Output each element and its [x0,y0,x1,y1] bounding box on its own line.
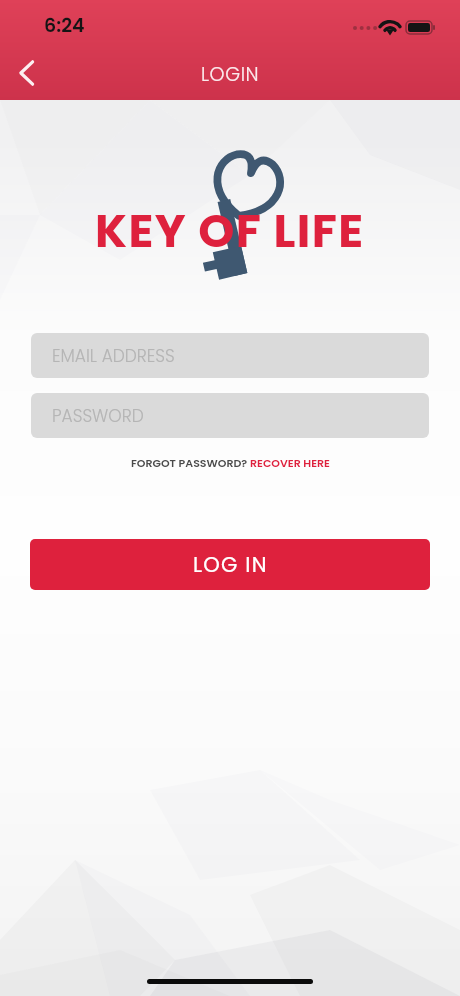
staticText: 6:24 [44,12,85,39]
staticText: KEY OF LIFE [95,199,365,263]
staticText: LOG IN [193,550,268,579]
button[interactable]: EMAIL ADDRESS [31,333,429,378]
staticText: LOGIN [201,61,260,88]
button[interactable]: PASSWORD [31,393,429,438]
button[interactable]: RECOVER HERE [250,455,330,470]
button[interactable]: Back [1,47,53,99]
button[interactable]: LOG IN [30,539,430,590]
staticText: EMAIL ADDRESS [52,344,175,368]
staticText: FORGOT PASSWORD? [131,455,250,470]
other: Status icons [348,10,448,40]
staticText: PASSWORD [52,404,144,428]
